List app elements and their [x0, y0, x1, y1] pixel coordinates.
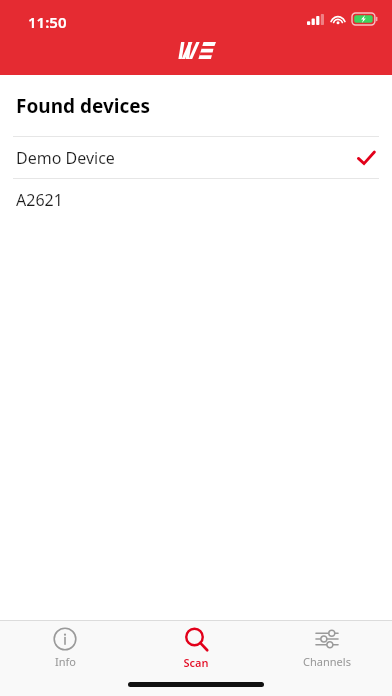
staticText: Channels — [303, 654, 351, 669]
button[interactable]: Info — [10, 621, 120, 676]
staticText: A2621 — [16, 189, 376, 211]
staticText: Demo Device — [16, 147, 356, 169]
button[interactable]: A2621 — [0, 179, 392, 220]
button[interactable]: Scan — [141, 621, 251, 676]
button[interactable]: Channels — [272, 621, 382, 676]
staticText: Info — [55, 654, 76, 669]
staticText: 11:50 — [28, 12, 67, 32]
staticText: Found devices — [16, 93, 151, 119]
other: Scan — [184, 627, 209, 652]
staticText: Scan — [183, 655, 209, 670]
button[interactable]: Demo Device — [0, 137, 392, 178]
other: Channels — [315, 627, 339, 651]
other: Info — [53, 627, 77, 651]
